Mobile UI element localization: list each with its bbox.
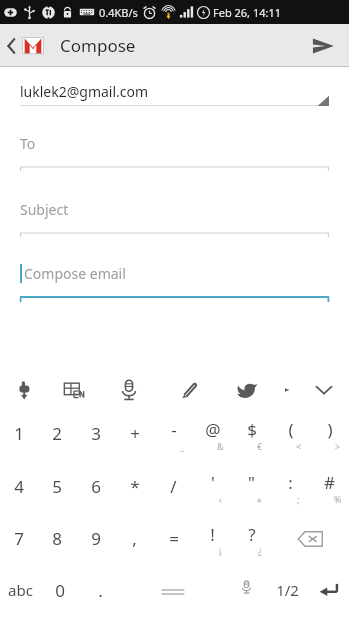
- button[interactable]: ": [232, 460, 271, 513]
- staticText: 0: [55, 579, 65, 602]
- staticText: Compose: [60, 34, 136, 57]
- button[interactable]: ': [193, 460, 232, 513]
- button[interactable]: $: [232, 407, 271, 460]
- button[interactable]: Voice input: [226, 564, 267, 616]
- button[interactable]: 1/2: [267, 564, 308, 616]
- staticText: .: [98, 579, 103, 602]
- staticText: 5: [52, 475, 62, 498]
- button[interactable]: Backspace: [271, 513, 349, 564]
- staticText: 9: [91, 527, 101, 550]
- button[interactable]: 4: [0, 460, 38, 513]
- staticText: «: [257, 493, 262, 505]
- staticText: ¿: [258, 544, 262, 556]
- staticText: 7: [14, 527, 24, 550]
- staticText: (: [288, 418, 294, 441]
- staticText: @: [205, 418, 221, 441]
- staticText: To: [20, 134, 36, 153]
- staticText: 0.4KB/s: [99, 5, 138, 20]
- button[interactable]: 2: [38, 407, 76, 460]
- staticText: Subject: [20, 200, 69, 219]
- button[interactable]: (: [271, 407, 310, 460]
- button[interactable]: .: [80, 564, 120, 616]
- staticText: 8: [52, 527, 62, 550]
- button[interactable]: abc: [0, 564, 40, 616]
- button[interactable]: 6: [76, 460, 115, 513]
- button[interactable]: Draw: [159, 373, 219, 407]
- button[interactable]: @: [193, 407, 232, 460]
- button[interactable]: !: [193, 513, 232, 564]
- staticText: 6: [91, 475, 101, 498]
- staticText: =: [169, 527, 179, 550]
- button[interactable]: 9: [76, 513, 115, 564]
- button[interactable]: Voice input: [99, 373, 159, 407]
- button[interactable]: Handwriting: [0, 373, 49, 407]
- staticText: *: [130, 475, 140, 498]
- staticText: abc: [8, 580, 33, 600]
- button[interactable]: More: [274, 373, 299, 407]
- button[interactable]: *: [115, 460, 154, 513]
- button[interactable]: ?: [232, 513, 271, 564]
- button[interactable]: Compose email: [20, 258, 329, 302]
- staticText: ‹: [219, 493, 222, 505]
- button[interactable]: #: [310, 460, 349, 513]
- staticText: 2: [52, 422, 62, 445]
- button[interactable]: Language EN: [49, 373, 99, 407]
- staticText: %: [334, 493, 342, 505]
- button[interactable]: 7: [0, 513, 38, 564]
- button[interactable]: :: [271, 460, 310, 513]
- button[interactable]: 8: [38, 513, 76, 564]
- button[interactable]: -: [154, 407, 193, 460]
- button[interactable]: ,: [115, 513, 154, 564]
- button[interactable]: 3: [76, 407, 115, 460]
- staticText: /: [170, 475, 177, 498]
- staticText: 3: [91, 422, 101, 445]
- staticText: 1/2: [276, 580, 299, 600]
- staticText: <: [296, 440, 302, 452]
- staticText: !: [210, 523, 215, 546]
- staticText: ¡: [219, 544, 222, 556]
- staticText: ): [327, 418, 333, 441]
- button[interactable]: Enter: [308, 564, 349, 616]
- staticText: ;: [297, 493, 300, 505]
- button[interactable]: luklek2@gmail.com: [20, 77, 329, 106]
- button[interactable]: Subject: [20, 194, 329, 238]
- staticText: 1: [14, 422, 24, 445]
- staticText: +: [130, 422, 140, 445]
- staticText: #: [324, 471, 335, 494]
- button[interactable]: =: [154, 513, 193, 564]
- button[interactable]: 5: [38, 460, 76, 513]
- staticText: €: [257, 440, 263, 452]
- button[interactable]: Emoji: [219, 373, 274, 407]
- staticText: Compose email: [24, 264, 126, 283]
- staticText: ': [211, 471, 215, 494]
- button[interactable]: 0: [40, 564, 80, 616]
- button[interactable]: 1: [0, 407, 38, 460]
- staticText: ,: [132, 527, 137, 550]
- button[interactable]: To: [20, 128, 329, 172]
- staticText: ": [248, 471, 255, 494]
- staticText: 4: [14, 475, 24, 498]
- staticText: Feb 26, 14:11: [213, 5, 282, 20]
- button[interactable]: Hide keyboard: [299, 373, 349, 407]
- staticText: $: [247, 418, 257, 441]
- staticText: -: [171, 418, 177, 441]
- staticText: &: [217, 440, 224, 452]
- button[interactable]: +: [115, 407, 154, 460]
- button[interactable]: ): [310, 407, 349, 460]
- button[interactable]: Navigate up: [0, 24, 52, 67]
- staticText: >: [335, 440, 341, 452]
- staticText: _: [180, 440, 184, 452]
- button[interactable]: Send: [297, 24, 349, 67]
- button[interactable]: Space: [120, 564, 226, 616]
- staticText: ?: [248, 523, 256, 546]
- staticText: :: [288, 471, 293, 494]
- button[interactable]: /: [154, 460, 193, 513]
- staticText: luklek2@gmail.com: [20, 82, 149, 101]
